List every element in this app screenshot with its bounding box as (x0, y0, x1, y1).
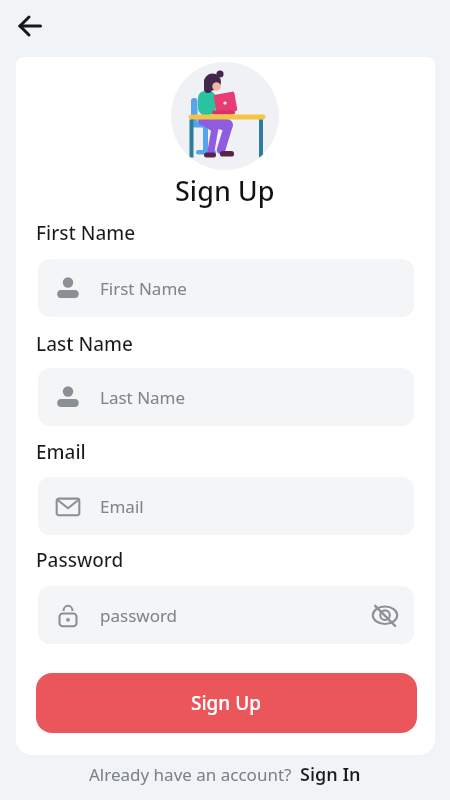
button[interactable]: First Name (38, 259, 414, 317)
staticText: First Name (36, 220, 136, 246)
staticText: password (100, 604, 178, 627)
staticText: Last Name (100, 386, 186, 409)
staticText: Sign Up (191, 690, 262, 716)
button[interactable]: Email (38, 477, 414, 535)
staticText: Password (36, 547, 124, 573)
button[interactable]: password (38, 586, 414, 644)
staticText: Email (100, 495, 144, 518)
staticText: Last Name (36, 331, 133, 357)
staticText: Sign Up (175, 172, 275, 209)
button[interactable]: Sign In (300, 762, 361, 787)
staticText: Email (36, 439, 86, 465)
staticText: First Name (100, 277, 187, 300)
staticText: Already have an account? (89, 763, 292, 786)
button[interactable]: Sign Up (36, 673, 417, 733)
button[interactable] (12, 8, 48, 44)
button[interactable]: Last Name (38, 368, 414, 426)
